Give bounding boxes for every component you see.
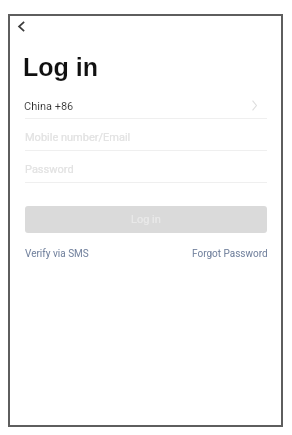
staticText: Mobile number/Email xyxy=(25,131,131,144)
button[interactable]: Forgot Password xyxy=(192,248,268,260)
staticText: Verify via SMS xyxy=(25,248,89,260)
button[interactable]: Back xyxy=(7,12,35,40)
staticText: Log in xyxy=(131,213,161,226)
staticText: Log in xyxy=(23,53,98,81)
button[interactable]: Mobile number/Email xyxy=(8,119,283,150)
staticText: Password xyxy=(25,163,74,176)
button[interactable]: Verify via SMS xyxy=(25,248,89,260)
button[interactable]: China +86 xyxy=(8,88,283,118)
staticText: Forgot Password xyxy=(192,248,268,260)
staticText: China +86 xyxy=(24,100,74,113)
button[interactable]: Password xyxy=(8,151,283,182)
